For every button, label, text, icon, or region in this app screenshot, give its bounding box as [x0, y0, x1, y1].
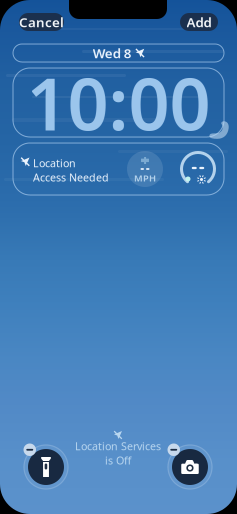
button[interactable]: Cancel: [19, 13, 64, 31]
button[interactable]: MPH: [125, 149, 165, 189]
staticText: Wed 8: [93, 44, 132, 62]
staticText: Location: [33, 156, 76, 170]
button[interactable]: Location: [21, 156, 125, 180]
staticText: Cancel: [19, 13, 64, 31]
button[interactable]: Wed 8: [13, 44, 224, 62]
button[interactable]: [178, 149, 218, 189]
staticText: is Off: [105, 453, 131, 467]
staticText: Add: [186, 13, 211, 31]
staticText: MPH: [134, 172, 156, 184]
staticText: Location Services: [75, 439, 161, 453]
staticText: 10:00: [26, 55, 210, 150]
button[interactable]: Camera: [165, 443, 215, 493]
button[interactable]: 10:00: [13, 68, 224, 137]
staticText: Access Needed: [33, 170, 109, 184]
button[interactable]: Add: [180, 13, 218, 31]
button[interactable]: Flashlight: [21, 443, 71, 493]
